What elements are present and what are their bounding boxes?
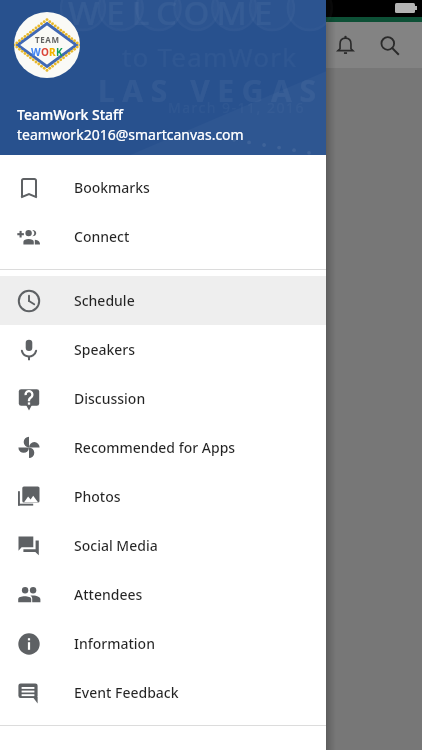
staticText: TeamWork Staff <box>17 105 124 124</box>
staticText: Social Media <box>74 536 158 555</box>
staticText: K <box>56 45 63 59</box>
staticText: Bookmarks <box>74 178 150 197</box>
staticText: R <box>49 45 56 59</box>
staticText: teamwork2016@smartcanvas.com <box>17 125 244 144</box>
staticText: Event Feedback <box>74 683 179 702</box>
staticText: Discussion <box>74 389 146 408</box>
button[interactable]: Search <box>367 22 411 68</box>
staticText: Schedule <box>74 291 135 310</box>
staticText: Photos <box>74 487 121 506</box>
button[interactable]: Notifications <box>323 22 367 68</box>
button[interactable]: Connect <box>0 212 326 261</box>
staticText: Attendees <box>74 585 143 604</box>
button[interactable]: Social Media <box>0 521 326 570</box>
button[interactable]: Information <box>0 619 326 668</box>
staticText: O <box>41 45 49 59</box>
button[interactable]: Discussion <box>0 374 326 423</box>
staticText: LAS VEGAS <box>98 70 324 111</box>
button[interactable]: Speakers <box>0 325 326 374</box>
staticText: Speakers <box>74 340 136 359</box>
staticText: W <box>31 45 41 59</box>
button[interactable]: Attendees <box>0 570 326 619</box>
staticText: WELCOME <box>68 0 280 35</box>
staticText: Recommended for Apps <box>74 438 236 457</box>
button[interactable]: Photos <box>0 472 326 521</box>
button[interactable]: Recommended for Apps <box>0 423 326 472</box>
staticText: March 9-11, 2016 <box>168 98 306 117</box>
button[interactable]: Bookmarks <box>0 163 326 212</box>
staticText: TEAM <box>35 34 60 45</box>
button[interactable]: Schedule <box>0 276 326 325</box>
staticText: Information <box>74 634 155 653</box>
staticText: Connect <box>74 227 130 246</box>
button[interactable]: Event Feedback <box>0 668 326 717</box>
